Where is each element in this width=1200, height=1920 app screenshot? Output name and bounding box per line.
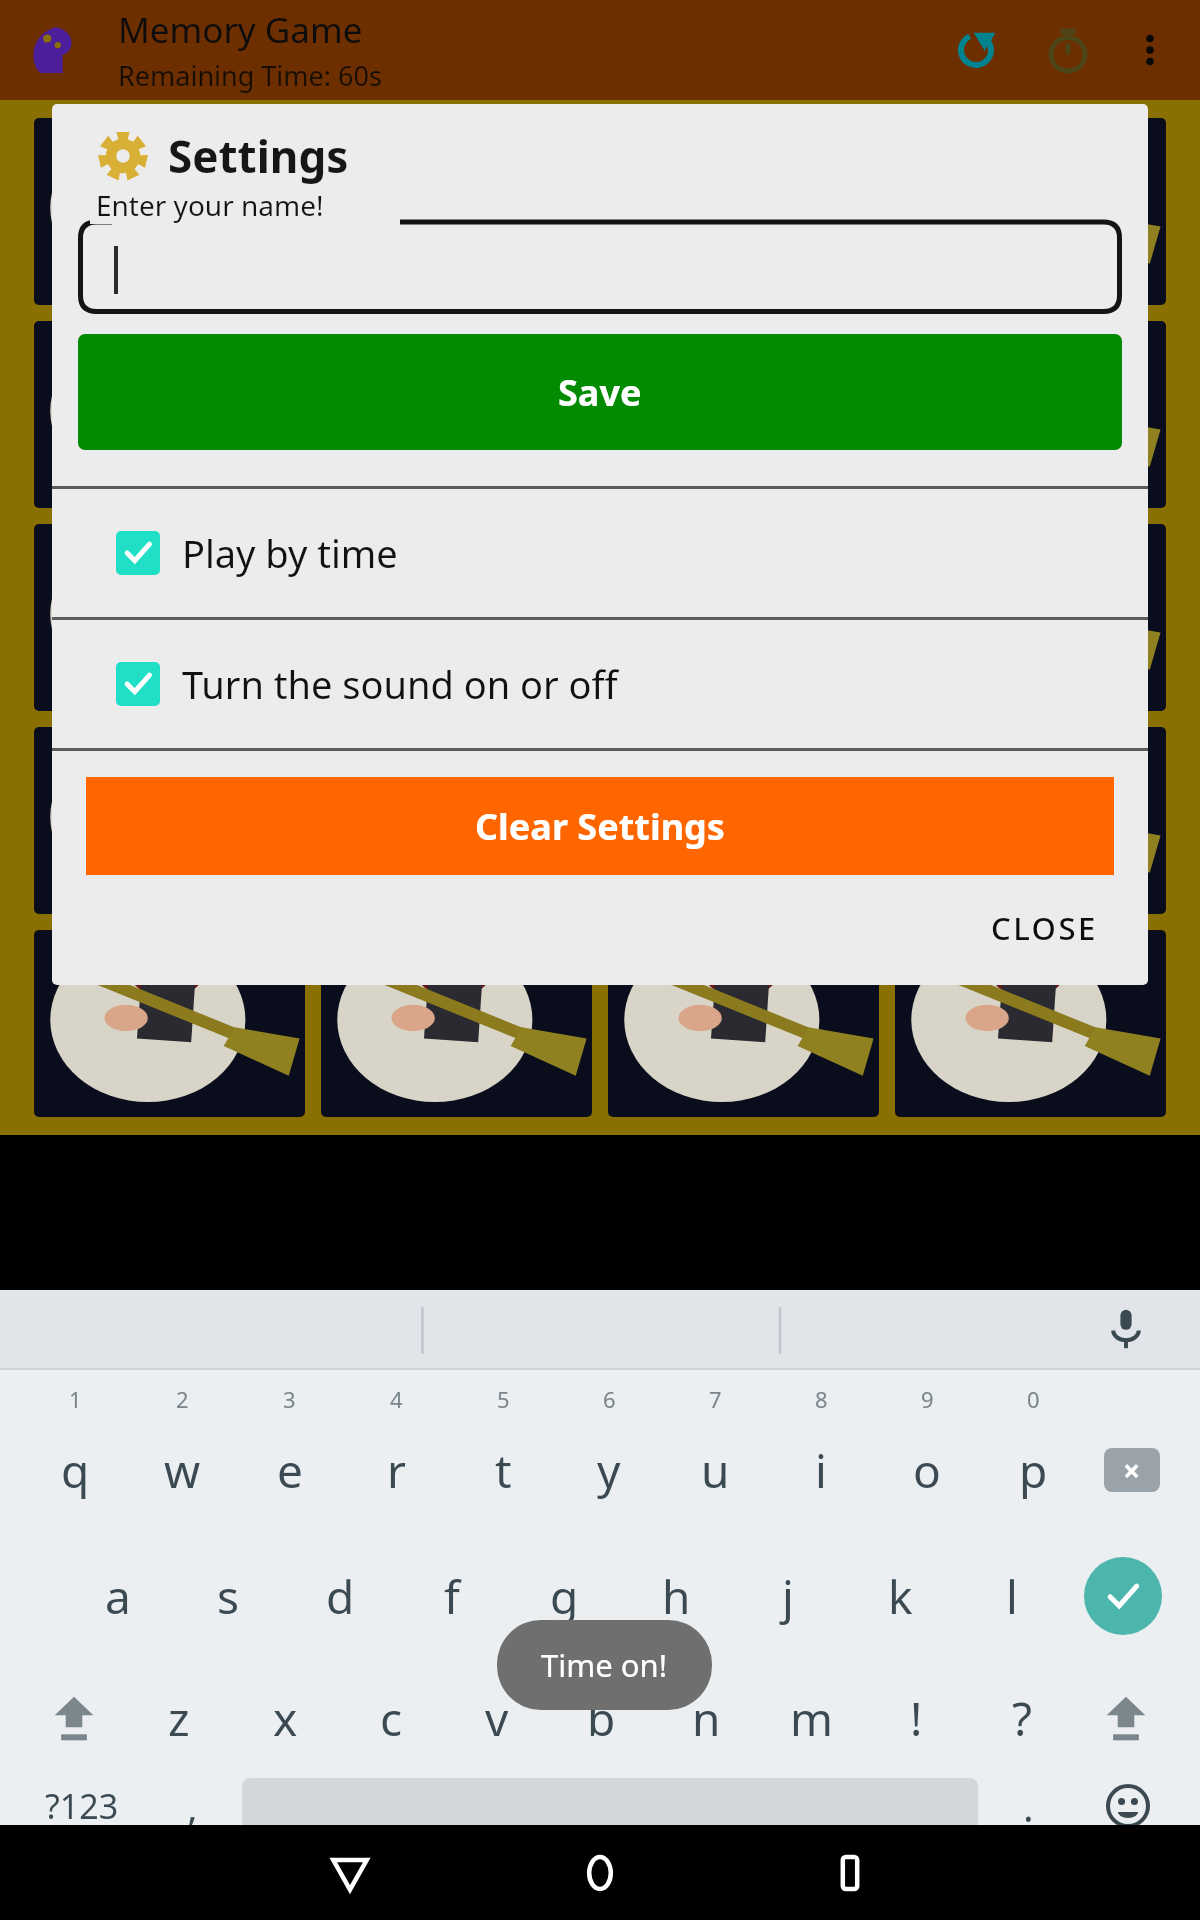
button[interactable]: b — [549, 1670, 654, 1766]
button[interactable] — [321, 524, 592, 711]
button[interactable]: t — [450, 1422, 556, 1518]
button[interactable] — [608, 524, 879, 711]
button[interactable]: Enter — [1068, 1548, 1178, 1644]
button[interactable] — [895, 524, 1166, 711]
staticText: 0 — [1027, 1384, 1040, 1414]
staticText: Enter your name! — [96, 186, 324, 224]
button[interactable]: k — [844, 1548, 956, 1644]
button[interactable]: m — [759, 1670, 864, 1766]
staticText: Play by time — [182, 527, 398, 579]
button[interactable] — [34, 930, 305, 1117]
button[interactable]: Voice input — [1096, 1299, 1156, 1359]
button[interactable]: c — [338, 1670, 444, 1766]
staticText: CLOSE — [991, 907, 1098, 949]
button[interactable] — [895, 321, 1166, 508]
button[interactable]: v — [444, 1670, 549, 1766]
button[interactable]: u — [662, 1422, 768, 1518]
staticText: i — [815, 1439, 827, 1502]
button[interactable]: Home — [530, 1825, 670, 1920]
button[interactable]: Shift — [22, 1670, 126, 1766]
staticText: Memory Game — [118, 6, 363, 54]
button[interactable]: Back — [280, 1825, 420, 1920]
button[interactable]: f — [396, 1548, 508, 1644]
staticText: Save — [558, 368, 642, 417]
staticText: t — [495, 1439, 512, 1502]
button[interactable] — [34, 727, 305, 914]
button[interactable]: o — [874, 1422, 980, 1518]
button[interactable] — [34, 524, 305, 711]
button[interactable]: Turn the sound on or off — [52, 620, 1148, 748]
button[interactable]: More options — [1114, 14, 1186, 86]
button[interactable]: d — [284, 1548, 396, 1644]
staticText: a — [105, 1565, 131, 1628]
staticText: Settings — [168, 126, 349, 186]
button[interactable]: z — [126, 1670, 232, 1766]
staticText: u — [701, 1439, 730, 1502]
staticText: p — [1019, 1439, 1048, 1502]
staticText: ? — [1012, 1687, 1032, 1750]
staticText: r — [387, 1439, 406, 1502]
button[interactable] — [321, 930, 592, 1117]
staticText: 2 — [176, 1384, 189, 1414]
button[interactable]: CLOSE — [971, 895, 1118, 961]
staticText: w — [164, 1439, 201, 1502]
button[interactable] — [321, 727, 592, 914]
button[interactable] — [895, 727, 1166, 914]
staticText: n — [692, 1687, 721, 1750]
staticText: b — [587, 1687, 616, 1750]
button[interactable]: h — [620, 1548, 732, 1644]
button[interactable] — [608, 118, 879, 305]
button[interactable] — [608, 727, 879, 914]
button[interactable] — [321, 321, 592, 508]
button[interactable]: q — [22, 1422, 129, 1518]
button[interactable]: Recent apps — [780, 1825, 920, 1920]
staticText: 7 — [709, 1384, 722, 1414]
button[interactable]: j — [732, 1548, 844, 1644]
staticText: . — [1023, 1779, 1034, 1833]
staticText: h — [662, 1565, 691, 1628]
button[interactable] — [608, 321, 879, 508]
staticText: x — [273, 1687, 298, 1750]
staticText: Clear Settings — [475, 802, 725, 851]
button[interactable]: . — [978, 1768, 1078, 1844]
button[interactable]: Play by time — [52, 489, 1148, 617]
button[interactable]: Backspace — [1086, 1422, 1178, 1518]
button[interactable] — [321, 118, 592, 305]
button[interactable]: p — [980, 1422, 1086, 1518]
button[interactable]: Space — [242, 1778, 978, 1834]
button[interactable]: e — [236, 1422, 343, 1518]
button[interactable] — [34, 321, 305, 508]
button[interactable]: Enter your name! — [78, 196, 1122, 314]
button[interactable]: , — [142, 1768, 242, 1844]
button[interactable]: n — [654, 1670, 759, 1766]
button[interactable]: i — [768, 1422, 874, 1518]
button[interactable]: w — [129, 1422, 236, 1518]
button[interactable]: g — [508, 1548, 620, 1644]
button[interactable]: Save — [78, 334, 1122, 450]
button[interactable]: s — [173, 1548, 284, 1644]
button[interactable]: ! — [864, 1670, 969, 1766]
button[interactable]: ? — [969, 1670, 1074, 1766]
button[interactable]: y — [556, 1422, 662, 1518]
button[interactable]: l — [956, 1548, 1068, 1644]
button[interactable]: Shift — [1074, 1670, 1178, 1766]
button[interactable] — [895, 118, 1166, 305]
button[interactable]: Emoji — [1078, 1768, 1178, 1844]
button[interactable] — [608, 930, 879, 1117]
button[interactable]: x — [232, 1670, 338, 1766]
staticText: Remaining Time: 60s — [118, 57, 382, 94]
staticText: e — [277, 1439, 303, 1502]
button[interactable] — [34, 118, 305, 305]
button[interactable]: Timer — [1022, 4, 1114, 96]
button[interactable]: ?123 — [22, 1768, 142, 1844]
button[interactable]: r — [343, 1422, 450, 1518]
staticText: y — [597, 1439, 621, 1502]
staticText: s — [217, 1565, 240, 1628]
button[interactable]: Clear Settings — [86, 777, 1114, 875]
button[interactable]: Restart — [930, 4, 1022, 96]
staticText: Turn the sound on or off — [182, 658, 618, 710]
button[interactable]: a — [62, 1548, 173, 1644]
staticText: × — [1123, 1450, 1141, 1491]
button[interactable] — [895, 930, 1166, 1117]
staticText: ! — [910, 1687, 923, 1750]
